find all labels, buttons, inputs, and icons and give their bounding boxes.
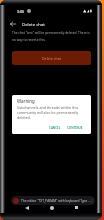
staticText: Warning <box>17 98 35 104</box>
button[interactable]: The editor "TXT_PARAM" with keyboard Typ… <box>11 196 95 205</box>
button[interactable]: Recent apps <box>72 203 81 212</box>
staticText: CANCEL <box>49 126 61 130</box>
button[interactable]: Back <box>22 203 31 212</box>
button[interactable]: CONTINUE <box>65 125 85 131</box>
staticText: Delete chat <box>42 56 62 61</box>
staticText: The editor "TXT_PARAM" with keyboard Typ… <box>21 199 91 203</box>
staticText: Delete chat <box>22 21 45 27</box>
staticText: CONTINUE <box>67 126 83 130</box>
button[interactable]: Home <box>47 203 56 212</box>
button[interactable]: Back <box>7 18 18 29</box>
staticText: Subchannels and threads within this comm… <box>17 105 85 120</box>
button[interactable]: CANCEL <box>47 125 63 131</box>
staticText: The chat "test" will be permanently dele… <box>12 31 93 42</box>
button[interactable]: Delete chat <box>12 51 91 65</box>
staticText: 3:06 <box>17 9 25 14</box>
